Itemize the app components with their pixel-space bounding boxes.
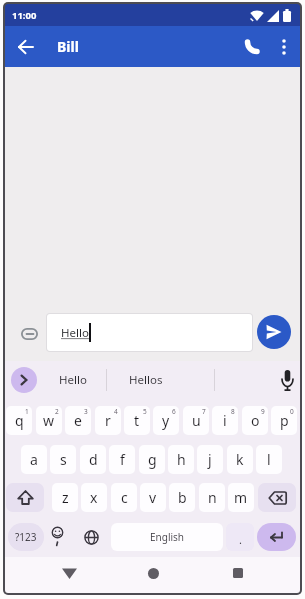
button[interactable]: k	[227, 445, 253, 474]
staticText: v	[149, 488, 157, 507]
staticText: r	[105, 411, 111, 430]
button[interactable]: h	[168, 445, 194, 474]
button[interactable]	[275, 366, 299, 394]
button[interactable]	[11, 367, 37, 393]
staticText: 7	[202, 407, 206, 416]
button[interactable]: m	[228, 483, 254, 512]
button[interactable]: g	[139, 445, 165, 474]
staticText: c	[121, 488, 128, 507]
button[interactable]: v	[140, 483, 166, 512]
staticText: u	[192, 411, 201, 430]
staticText: p	[280, 411, 289, 430]
button[interactable]: f	[109, 445, 135, 474]
button[interactable]: u	[183, 406, 209, 435]
staticText: 2	[55, 407, 59, 416]
button[interactable]: r	[95, 406, 121, 435]
button[interactable]: n	[199, 483, 225, 512]
staticText: English	[150, 530, 185, 544]
staticText: y	[162, 411, 170, 430]
button[interactable]: b	[169, 483, 195, 512]
button[interactable]: Hello	[48, 361, 98, 399]
button[interactable]: e	[65, 406, 91, 435]
button[interactable]: c	[111, 483, 137, 512]
staticText: 3	[84, 407, 88, 416]
staticText: Hellos	[129, 372, 163, 388]
staticText: Bill	[57, 37, 79, 56]
staticText: 1	[25, 407, 29, 416]
button[interactable]: i	[212, 406, 238, 435]
staticText: 9	[261, 407, 265, 416]
staticText: z	[62, 488, 69, 507]
button[interactable]	[272, 35, 296, 59]
staticText: x	[90, 488, 98, 507]
button[interactable]: q	[6, 406, 32, 435]
staticText: 6	[172, 407, 176, 416]
staticText: a	[30, 450, 38, 469]
button[interactable]	[6, 483, 44, 512]
staticText: ?123	[15, 530, 37, 544]
button[interactable]: l	[256, 445, 282, 474]
button[interactable]	[5, 26, 46, 67]
button[interactable]: y	[153, 406, 179, 435]
button[interactable]	[44, 523, 70, 551]
button[interactable]	[257, 523, 296, 551]
button[interactable]: a	[21, 445, 47, 474]
staticText: n	[208, 488, 217, 507]
staticText: o	[251, 411, 260, 430]
staticText: 4	[114, 407, 118, 416]
button[interactable]: d	[80, 445, 106, 474]
button[interactable]: t	[124, 406, 150, 435]
staticText: k	[236, 450, 244, 469]
button[interactable]: ?123	[8, 523, 44, 551]
staticText: g	[148, 450, 157, 469]
button[interactable]: p	[271, 406, 297, 435]
button[interactable]	[135, 557, 171, 589]
button[interactable]: x	[81, 483, 107, 512]
button[interactable]: w	[36, 406, 62, 435]
staticText: e	[74, 411, 82, 430]
button[interactable]: .	[226, 523, 254, 551]
button[interactable]: Hellos	[116, 361, 176, 399]
staticText: q	[15, 411, 24, 430]
button[interactable]	[78, 523, 104, 551]
button[interactable]: Hello	[47, 314, 252, 351]
staticText: m	[234, 488, 248, 507]
button[interactable]	[236, 31, 268, 63]
staticText: t	[134, 411, 140, 430]
staticText: Hello	[59, 372, 87, 388]
staticText: b	[178, 488, 187, 507]
button[interactable]	[258, 483, 296, 512]
staticText: d	[89, 450, 98, 469]
button[interactable]	[257, 315, 291, 349]
staticText: w	[43, 411, 55, 430]
staticText: 8	[231, 407, 235, 416]
button[interactable]	[220, 557, 256, 589]
staticText: i	[223, 411, 227, 430]
staticText: 0	[290, 407, 294, 416]
staticText: j	[208, 450, 212, 469]
staticText: f	[120, 450, 125, 469]
staticText: .	[239, 532, 242, 547]
button[interactable]: o	[242, 406, 268, 435]
button[interactable]: English	[111, 523, 223, 551]
button[interactable]: z	[52, 483, 78, 512]
button[interactable]	[51, 557, 87, 589]
staticText: s	[60, 450, 67, 469]
staticText: h	[177, 450, 186, 469]
button[interactable]	[16, 320, 43, 347]
staticText: 5	[143, 407, 147, 416]
staticText: 11:00	[12, 9, 37, 22]
staticText: l	[267, 450, 271, 469]
staticText: Hello	[61, 325, 89, 341]
button[interactable]: j	[197, 445, 223, 474]
button[interactable]: s	[50, 445, 76, 474]
